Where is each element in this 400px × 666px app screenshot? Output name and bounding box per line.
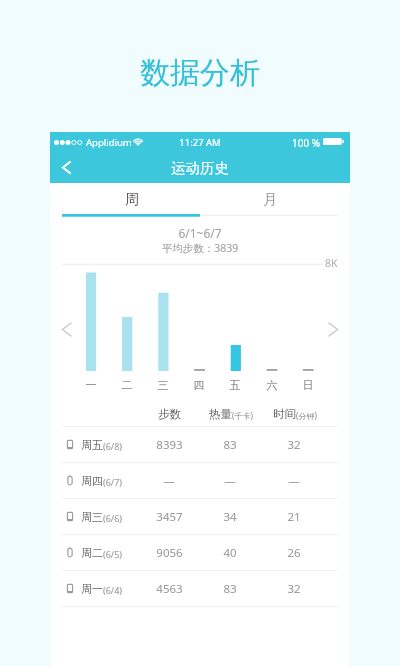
staticText: 11:27 AM: [50, 136, 350, 149]
staticText: —: [288, 473, 300, 489]
staticText: 周二: [81, 546, 103, 560]
staticText: Applidium: [86, 136, 132, 149]
button[interactable]: 周五: [50, 427, 350, 462]
staticText: 3457: [156, 509, 183, 525]
staticText: (分钟): [296, 410, 317, 421]
staticText: 四: [190, 378, 208, 392]
staticText: 步数: [158, 407, 181, 421]
staticText: 运动历史: [171, 159, 229, 177]
staticText: (6/6): [103, 512, 123, 524]
button[interactable]: 月: [200, 183, 338, 217]
staticText: 32: [287, 437, 301, 453]
staticText: 时间: [273, 407, 296, 421]
staticText: 日: [299, 378, 317, 392]
staticText: 三: [154, 378, 172, 392]
staticText: —: [224, 473, 236, 489]
staticText: 40: [223, 545, 237, 561]
staticText: 26: [287, 545, 301, 561]
staticText: 周: [125, 191, 139, 209]
staticText: 五: [226, 378, 244, 392]
staticText: 周一: [81, 582, 103, 596]
staticText: 平均步数：3839: [50, 241, 350, 255]
staticText: 83: [223, 581, 237, 597]
staticText: 8K: [325, 256, 338, 270]
staticText: 周四: [81, 474, 103, 488]
staticText: (6/4): [103, 584, 123, 596]
staticText: 周三: [81, 510, 103, 524]
staticText: 9056: [156, 545, 183, 561]
staticText: (千卡): [232, 410, 253, 421]
staticText: 83: [223, 437, 237, 453]
staticText: 一: [82, 378, 100, 392]
staticText: 月: [263, 191, 277, 209]
staticText: (6/7): [103, 476, 123, 488]
staticText: (6/8): [103, 440, 123, 452]
staticText: 8393: [156, 437, 183, 453]
staticText: 数据分析: [140, 54, 260, 92]
staticText: 100 %: [292, 136, 321, 150]
staticText: 34: [223, 509, 237, 525]
staticText: 6/1~6/7: [50, 225, 350, 241]
button[interactable]: Back: [54, 155, 79, 180]
staticText: 32: [287, 581, 301, 597]
staticText: —: [163, 473, 175, 489]
staticText: 二: [118, 378, 136, 392]
button[interactable]: 周四: [50, 463, 350, 498]
staticText: 4563: [156, 581, 183, 597]
staticText: 六: [263, 378, 281, 392]
button[interactable]: 周一: [50, 571, 350, 606]
button[interactable]: 周二: [50, 535, 350, 570]
staticText: (6/5): [103, 548, 123, 560]
button[interactable]: 周三: [50, 499, 350, 534]
button[interactable]: 周: [62, 183, 200, 217]
staticText: 周五: [81, 438, 103, 452]
staticText: 热量: [209, 407, 232, 421]
staticText: 21: [287, 509, 301, 525]
